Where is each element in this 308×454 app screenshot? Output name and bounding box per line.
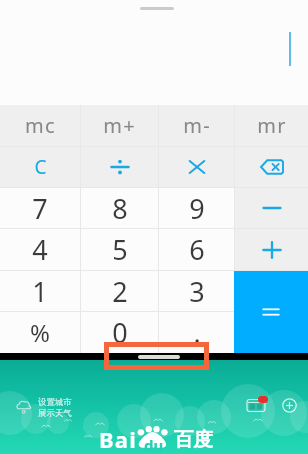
staticText: 9 (189, 190, 205, 227)
button[interactable]: Divide (81, 147, 158, 187)
staticText: m+ (103, 112, 136, 139)
staticText: 设置城市 (38, 397, 72, 408)
staticText: % (30, 316, 50, 349)
button[interactable]: 5 (81, 229, 158, 270)
staticText: 展示天气 (38, 408, 72, 419)
button[interactable]: . (159, 312, 234, 353)
staticText: Bai (99, 424, 137, 454)
staticText: m- (183, 112, 211, 139)
button[interactable]: 0 (81, 312, 158, 353)
button[interactable]: Backspace (235, 147, 308, 187)
staticText: mr (257, 112, 287, 139)
button[interactable]: 9 (159, 188, 234, 228)
staticText: 5 (112, 231, 128, 268)
button[interactable]: mc (0, 105, 80, 146)
button[interactable]: 2 (81, 271, 158, 311)
staticText: 4 (32, 231, 48, 268)
staticText: C (34, 154, 47, 180)
button[interactable]: 8 (81, 188, 158, 228)
button[interactable]: m+ (81, 105, 158, 146)
staticText: 2 (112, 273, 128, 310)
staticText: 百度 (174, 427, 213, 452)
button[interactable]: App shortcut (246, 398, 266, 412)
button[interactable]: Add widget (282, 398, 297, 413)
button[interactable]: % (0, 312, 80, 353)
staticText: 0 (112, 314, 128, 351)
staticText: . (193, 314, 201, 351)
staticText: 8 (112, 190, 128, 227)
staticText: 7 (32, 190, 48, 227)
button[interactable]: 1 (0, 271, 80, 311)
button[interactable]: 4 (0, 229, 80, 270)
button[interactable]: m- (159, 105, 234, 146)
button[interactable]: Minus (235, 188, 308, 228)
staticText: du (144, 435, 164, 454)
staticText: 1 (32, 273, 48, 310)
staticText: 3 (189, 273, 205, 310)
staticText: mc (25, 112, 56, 139)
button[interactable]: 设置城市 (16, 397, 72, 419)
button[interactable]: C (0, 147, 80, 187)
button[interactable]: Plus (235, 229, 308, 270)
button[interactable]: 7 (0, 188, 80, 228)
button[interactable]: Multiply (159, 147, 234, 187)
button[interactable]: 3 (159, 271, 234, 311)
button[interactable]: 6 (159, 229, 234, 270)
staticText: 6 (189, 231, 205, 268)
button[interactable]: mr (235, 105, 308, 146)
button[interactable]: Equals (234, 271, 308, 353)
